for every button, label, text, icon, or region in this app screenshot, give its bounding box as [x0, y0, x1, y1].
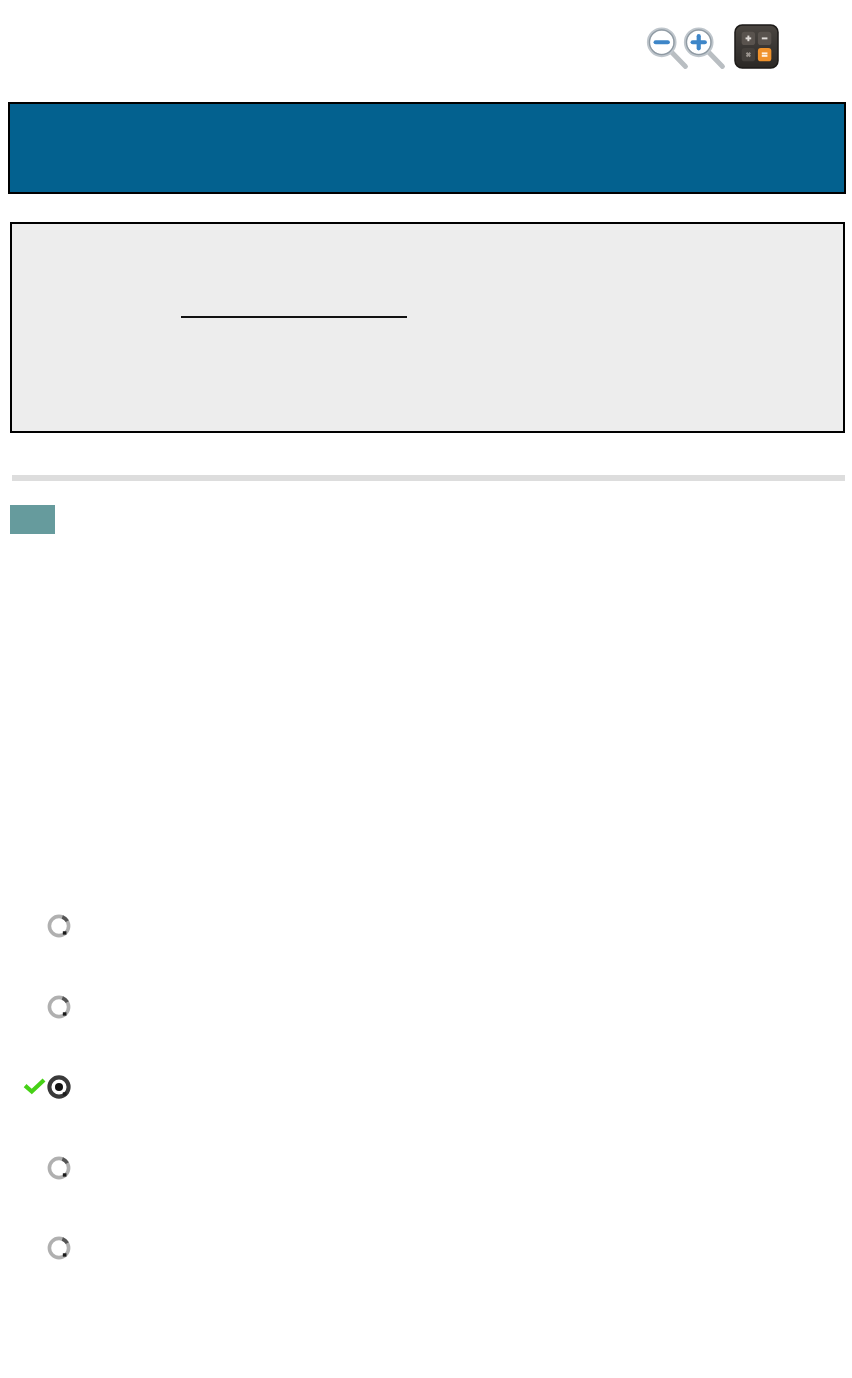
button[interactable]: Option [0, 1230, 852, 1264]
button[interactable]: Selected option [0, 1069, 852, 1103]
button[interactable]: Zoom out [645, 26, 689, 70]
button[interactable]: Option [0, 989, 852, 1023]
button[interactable] [181, 302, 407, 318]
button[interactable]: Zoom in [682, 26, 726, 70]
other: Option [47, 914, 71, 938]
button[interactable]: Calculator [735, 25, 778, 68]
other: Selected option [47, 1075, 71, 1099]
button[interactable]: Option [0, 1150, 852, 1184]
button[interactable]: Option [0, 908, 852, 942]
other: Option [47, 1236, 71, 1260]
other: Option [47, 1156, 71, 1180]
other: Option [47, 995, 71, 1019]
